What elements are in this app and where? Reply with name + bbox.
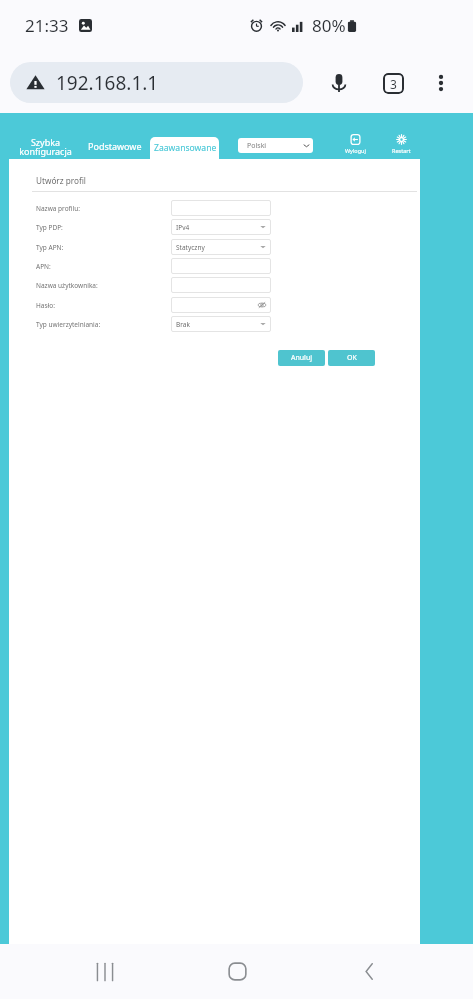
button[interactable]: Zaawansowane xyxy=(150,137,219,159)
staticText: Nazwa profilu: xyxy=(36,204,80,213)
button[interactable]: Home xyxy=(171,944,303,999)
button[interactable] xyxy=(171,277,271,293)
button[interactable]: Recent apps xyxy=(38,944,171,999)
staticText: Zaawansowane xyxy=(154,142,217,154)
button[interactable]: Wyloguj xyxy=(339,131,372,155)
staticText: Statyczny xyxy=(176,243,205,252)
button[interactable]: 192.168.1.1 xyxy=(10,62,303,103)
staticText: OK xyxy=(347,353,357,363)
staticText: Szybka konfiguracja xyxy=(19,136,72,158)
button[interactable]: Szybka konfiguracja xyxy=(15,136,75,160)
staticText: Hasło: xyxy=(36,301,55,310)
button[interactable] xyxy=(171,200,271,216)
staticText: IPv4 xyxy=(176,223,190,232)
staticText: Brak xyxy=(176,320,190,329)
staticText: 80% xyxy=(312,14,346,37)
staticText: Anuluj xyxy=(291,353,313,363)
button[interactable]: Back xyxy=(303,944,435,999)
button[interactable]: Polski xyxy=(238,138,313,153)
staticText: APN: xyxy=(36,262,51,271)
staticText: Polski xyxy=(247,141,267,151)
staticText: 21:33 xyxy=(25,14,69,37)
button[interactable] xyxy=(171,297,271,313)
staticText: Utwórz profil xyxy=(36,175,86,186)
button[interactable]: OK xyxy=(328,350,375,366)
button[interactable]: Anuluj xyxy=(278,350,325,366)
staticText: Nazwa użytkownika: xyxy=(36,281,98,290)
button[interactable]: Tabs xyxy=(373,63,413,103)
button[interactable]: Podstawowe xyxy=(88,140,142,154)
staticText: Podstawowe xyxy=(88,140,142,152)
staticText: 3 xyxy=(390,76,397,92)
button[interactable]: Voice search xyxy=(319,63,359,103)
button[interactable]: Brak xyxy=(171,316,271,332)
staticText: 192.168.1.1 xyxy=(56,70,159,96)
button[interactable]: Restart xyxy=(385,131,418,155)
button[interactable]: IPv4 xyxy=(171,219,271,235)
staticText: Wyloguj xyxy=(345,147,366,154)
button[interactable]: Statyczny xyxy=(171,239,271,255)
staticText: Typ uwierzytelniania: xyxy=(36,320,101,329)
staticText: Typ APN: xyxy=(36,243,64,252)
button[interactable] xyxy=(171,258,271,274)
staticText: Restart xyxy=(392,147,411,154)
staticText: Typ PDP: xyxy=(36,223,63,232)
button[interactable]: More options xyxy=(421,63,461,103)
